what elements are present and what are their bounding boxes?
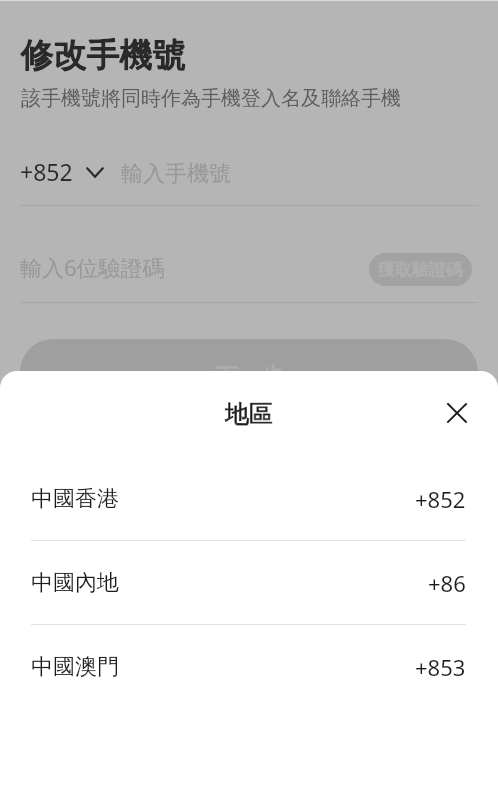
staticText: 下一步: [215, 362, 284, 391]
button[interactable]: 中國澳門: [0, 625, 498, 708]
staticText: 地區: [225, 399, 273, 429]
staticText: 輸入手機號: [121, 160, 231, 188]
button[interactable]: 下一步: [20, 339, 478, 405]
staticText: 下一步: [215, 362, 284, 391]
staticText: 獲取驗證碼: [378, 259, 463, 280]
button[interactable]: 獲取驗證碼: [369, 253, 472, 286]
button[interactable]: 中國內地: [0, 541, 498, 624]
button[interactable]: 中國香港: [0, 457, 498, 540]
button[interactable]: Close: [440, 396, 476, 432]
staticText: 中國香港: [31, 485, 119, 513]
staticText: 修改手機號: [21, 34, 186, 76]
staticText: 中國內地: [31, 569, 119, 597]
button[interactable]: +852: [20, 152, 104, 194]
staticText: +852: [415, 484, 466, 514]
staticText: +86: [428, 568, 466, 598]
staticText: 修改手機號: [21, 34, 186, 76]
staticText: 輸入6位驗證碼: [20, 252, 165, 282]
staticText: +852: [20, 156, 73, 187]
staticText: 地區: [225, 399, 273, 429]
staticText: 該手機號將同時作為手機登入名及聯絡手機: [21, 86, 401, 111]
staticText: 中國澳門: [31, 653, 119, 681]
staticText: +853: [415, 652, 466, 682]
staticText: 獲取驗證碼: [378, 259, 463, 280]
